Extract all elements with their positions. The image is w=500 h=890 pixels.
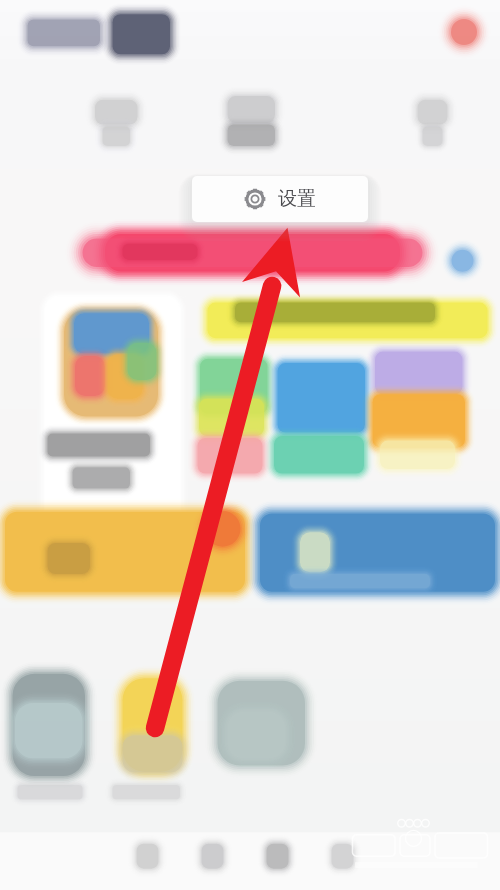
button[interactable]: 设置 bbox=[192, 176, 368, 222]
other: 设置 bbox=[244, 188, 266, 210]
staticText: 设置 bbox=[278, 187, 316, 211]
